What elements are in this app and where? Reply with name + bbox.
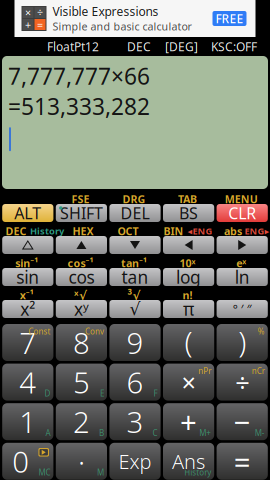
staticText: n!	[183, 288, 193, 302]
staticText: 5	[73, 363, 90, 402]
button[interactable]: log	[163, 268, 214, 286]
staticText: 10ˣ	[180, 256, 196, 270]
button[interactable]: Right	[217, 236, 268, 254]
staticText: )	[238, 322, 246, 361]
button[interactable]: SHIFT	[56, 204, 107, 222]
staticText: F	[154, 388, 158, 399]
staticText: Const	[28, 326, 50, 337]
staticText: ALT	[14, 202, 41, 224]
button[interactable]: ALT	[2, 204, 53, 222]
staticText: tan⁻¹	[121, 256, 147, 270]
button[interactable]: +	[163, 403, 214, 440]
button[interactable]: 4	[2, 364, 53, 401]
button[interactable]: 7	[2, 324, 53, 361]
button[interactable]: tan	[109, 268, 161, 286]
button[interactable]: Ans	[163, 443, 214, 480]
staticText: TAB	[178, 192, 197, 206]
staticText: =	[37, 17, 43, 32]
staticText: DRG	[122, 192, 145, 206]
staticText: ×	[182, 365, 196, 399]
staticText: [DEG]	[165, 38, 198, 54]
staticText: BIN	[163, 224, 183, 238]
button[interactable]: √	[109, 300, 161, 318]
staticText: 7,777,777×66	[8, 61, 150, 91]
button[interactable]: )	[217, 324, 268, 361]
staticText: ° ′ ″	[233, 301, 252, 317]
staticText: E	[100, 388, 104, 399]
staticText: x⁻¹	[20, 288, 34, 302]
staticText: =	[234, 442, 251, 480]
staticText: tan	[121, 265, 148, 288]
button[interactable]: (	[163, 324, 214, 361]
button[interactable]: 0	[2, 443, 53, 480]
staticText: DEL	[120, 202, 149, 224]
staticText: abs	[224, 224, 242, 238]
button[interactable]: CLR	[217, 204, 268, 222]
staticText: 4	[19, 363, 36, 402]
button[interactable]: BS	[163, 204, 214, 222]
staticText: %	[258, 326, 265, 337]
staticText: 7	[19, 323, 36, 362]
staticText: +	[25, 17, 31, 32]
button[interactable]: π	[163, 300, 214, 318]
staticText: ÷	[235, 365, 249, 399]
button[interactable]: 1	[2, 403, 53, 440]
staticText: 0	[12, 442, 29, 480]
button[interactable]: ÷	[217, 364, 268, 401]
staticText: M-	[255, 428, 265, 438]
staticText: Ans	[172, 448, 205, 475]
staticText: +	[180, 402, 197, 441]
staticText: HEX	[72, 224, 93, 238]
staticText: History	[184, 467, 211, 478]
staticText: log	[176, 265, 201, 288]
staticText: Exp	[118, 448, 151, 475]
button[interactable]: Down	[109, 236, 161, 254]
button[interactable]: sin	[2, 268, 53, 286]
staticText: ÷	[37, 5, 43, 20]
button[interactable]: Page up	[2, 236, 53, 254]
button[interactable]: cos	[56, 268, 107, 286]
staticText: MC	[38, 467, 50, 478]
staticText: 3	[126, 402, 143, 441]
button[interactable]: −	[217, 403, 268, 440]
button[interactable]: FREE	[212, 11, 246, 26]
staticText: DEC	[5, 224, 26, 238]
staticText: sin⁻¹	[15, 256, 38, 270]
button[interactable]: x²	[2, 300, 53, 318]
staticText: 1	[19, 402, 36, 441]
staticText: A	[45, 428, 50, 438]
staticText: 8	[73, 323, 90, 362]
button[interactable]: ° ′ ″	[217, 300, 268, 318]
button[interactable]: ·	[56, 443, 107, 480]
button[interactable]: =	[217, 443, 268, 480]
staticText: 2	[73, 402, 90, 441]
button[interactable]: Exp	[109, 443, 161, 480]
staticText: History	[30, 225, 64, 237]
staticText: FloatPt12	[47, 38, 99, 54]
staticText: ENG▸	[244, 225, 269, 237]
button[interactable]: Left	[163, 236, 214, 254]
staticText: M	[97, 467, 104, 478]
staticText: FSE	[71, 192, 89, 206]
staticText: 9	[126, 323, 143, 362]
button[interactable]: 6	[109, 364, 161, 401]
staticText: C	[153, 428, 158, 438]
staticText: (	[185, 322, 193, 361]
staticText: ˣ√	[74, 287, 87, 303]
button[interactable]: Up	[56, 236, 107, 254]
staticText: ³√	[127, 287, 140, 303]
staticText: sin	[16, 265, 39, 288]
button[interactable]: ×	[163, 364, 214, 401]
button[interactable]: 2	[56, 403, 107, 440]
staticText: √	[129, 299, 140, 319]
staticText: ·	[78, 442, 85, 480]
staticText: nPr	[198, 366, 211, 376]
button[interactable]: 3	[109, 403, 161, 440]
staticText: DEC	[127, 38, 151, 54]
button[interactable]: ln	[217, 268, 268, 286]
button[interactable]: 8	[56, 324, 107, 361]
button[interactable]: xʸ	[56, 300, 107, 318]
button[interactable]: DEL	[109, 204, 161, 222]
button[interactable]: 5	[56, 364, 107, 401]
button[interactable]: 9	[109, 324, 161, 361]
